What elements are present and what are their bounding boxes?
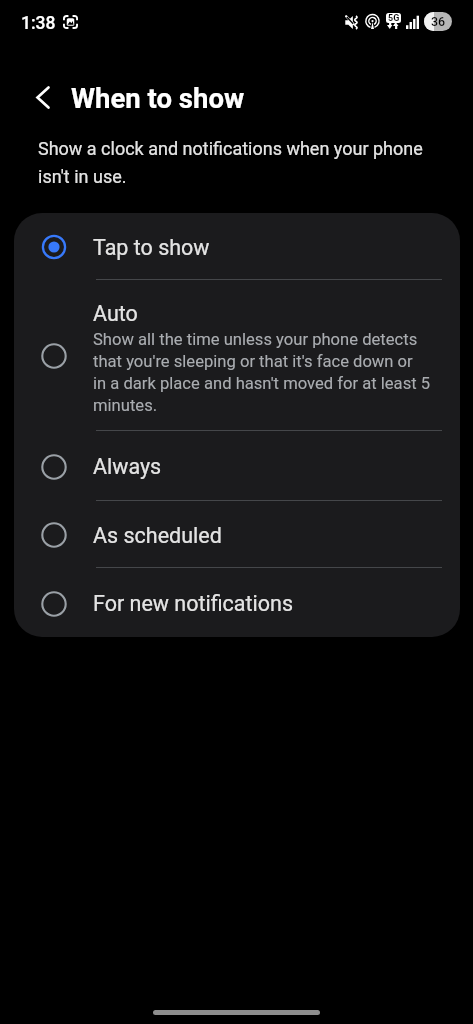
- button[interactable]: Always: [14, 431, 460, 500]
- staticText: 5G: [388, 13, 400, 23]
- staticText: Show a clock and notifications when your…: [38, 138, 423, 188]
- button[interactable]: Tap to show: [14, 213, 460, 279]
- staticText: Always: [93, 454, 162, 479]
- button[interactable]: Auto: [14, 280, 460, 430]
- button[interactable]: As scheduled: [14, 501, 460, 567]
- staticText: Show all the time unless your phone dete…: [93, 330, 431, 415]
- staticText: As scheduled: [93, 523, 222, 548]
- button[interactable]: For new notifications: [14, 568, 460, 637]
- staticText: 1:38: [21, 13, 56, 34]
- staticText: Tap to show: [93, 235, 210, 260]
- staticText: 36: [431, 14, 446, 29]
- staticText: Auto: [93, 301, 138, 326]
- staticText: When to show: [71, 82, 245, 114]
- button[interactable]: Back: [21, 75, 65, 119]
- staticText: For new notifications: [93, 591, 294, 616]
